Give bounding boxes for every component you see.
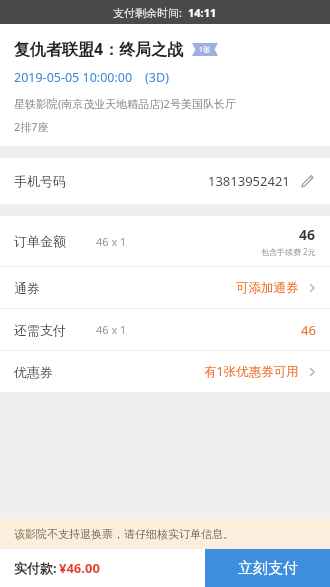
- staticText: 星轶影院(南京茂业天地精品店)2号美国队长厅: [14, 96, 236, 111]
- staticText: 该影院不支持退换票，请仔细核实订单信息。: [14, 527, 234, 541]
- staticText: 还需支付: [14, 322, 66, 338]
- staticText: 2排7座: [14, 119, 49, 134]
- staticText: 2019-05-05 10:00:00 (3D): [14, 69, 169, 86]
- staticText: 支付剩余时间:: [113, 5, 182, 20]
- staticText: 复仇者联盟4：终局之战: [14, 38, 184, 60]
- staticText: 手机号码: [14, 173, 66, 189]
- staticText: 46 x 1: [96, 322, 127, 337]
- other: 编辑手机号码: [298, 172, 316, 190]
- staticText: 有1张优惠券可用: [204, 363, 299, 380]
- button[interactable]: 订单金额: [0, 216, 330, 266]
- staticText: 46: [301, 321, 316, 339]
- button[interactable]: 通券: [0, 267, 330, 308]
- staticText: 立刻支付: [238, 559, 298, 578]
- button[interactable]: 还需支付: [0, 309, 330, 350]
- staticText: 优惠券: [14, 364, 53, 380]
- button[interactable]: 优惠券: [0, 351, 330, 392]
- staticText: 通券: [14, 280, 40, 296]
- staticText: ¥46.00: [59, 559, 100, 577]
- button[interactable]: 立刻支付: [205, 549, 330, 587]
- staticText: 13813952421: [208, 172, 290, 190]
- staticText: 14:11: [188, 5, 217, 20]
- staticText: 46 x 1: [96, 234, 127, 249]
- staticText: 46: [299, 225, 316, 244]
- staticText: 订单金额: [14, 233, 66, 249]
- staticText: 实付款:: [14, 559, 57, 577]
- staticText: 可添加通券: [236, 280, 299, 296]
- staticText: 包含手续费 2元: [261, 246, 316, 257]
- button[interactable]: 手机号码: [0, 158, 330, 204]
- staticText: 1张: [199, 45, 211, 55]
